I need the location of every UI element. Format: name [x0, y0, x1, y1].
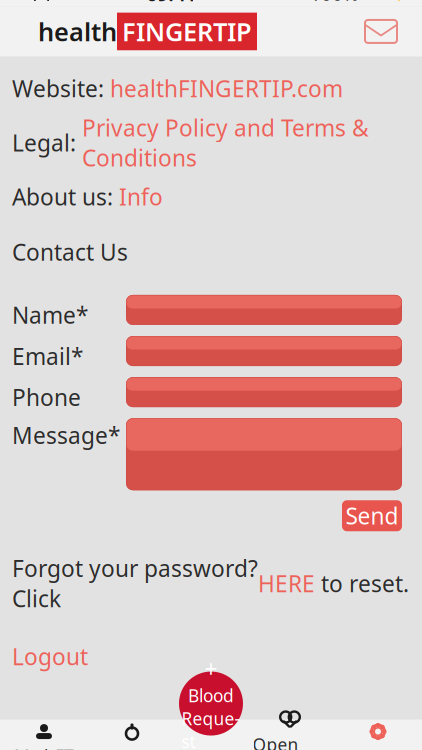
- button[interactable]: Settings: [334, 720, 422, 750]
- staticText: +: [204, 654, 217, 684]
- button[interactable]: Phone: [126, 377, 402, 407]
- staticText: Logout: [12, 641, 88, 672]
- button[interactable]: Name*: [126, 295, 402, 325]
- button[interactable]: Open Requests: [246, 720, 334, 750]
- staticText: Email*: [12, 341, 83, 371]
- button[interactable]: Forgot your password? Click: [12, 553, 409, 613]
- staticText: Message*: [12, 420, 120, 450]
- button[interactable]: Messages: [360, 14, 402, 48]
- staticText: Privacy Policy and Terms & Conditions: [82, 112, 369, 173]
- staticText: Legal:: [12, 128, 82, 158]
- staticText: Contact Us: [12, 237, 128, 267]
- staticText: healthFINGERTIP.com: [110, 73, 343, 103]
- staticText: Send: [345, 501, 398, 531]
- staticText: Name*: [12, 300, 88, 330]
- staticText: Info: [119, 182, 163, 212]
- staticText: Website:: [12, 73, 110, 103]
- button[interactable]: Website:: [12, 73, 343, 103]
- button[interactable]: My Activity: [88, 720, 176, 750]
- staticText: Open Requests: [252, 733, 327, 750]
- staticText: Forgot your password? Click: [12, 553, 258, 613]
- staticText: ⚡: [394, 0, 412, 2]
- button[interactable]: Send: [342, 500, 402, 531]
- button[interactable]: My hFT: [0, 720, 88, 750]
- button[interactable]: Blood Request: [179, 672, 243, 736]
- staticText: FINGERTIP: [122, 15, 252, 48]
- staticText: health: [38, 15, 117, 48]
- button[interactable]: About us:: [12, 182, 163, 212]
- staticText: About us:: [12, 182, 119, 212]
- staticText: 09:41: [146, 0, 196, 7]
- button[interactable]: Email*: [126, 336, 402, 366]
- staticText: My hFT: [14, 744, 74, 750]
- staticText: Phone: [12, 382, 81, 412]
- button[interactable]: Logout: [12, 641, 88, 672]
- staticText: to reset.: [315, 568, 409, 598]
- button[interactable]: health: [38, 13, 257, 50]
- staticText: Blood: [188, 684, 234, 707]
- button[interactable]: Legal:: [12, 112, 369, 173]
- staticText: HERE: [258, 568, 315, 598]
- staticText: Request: [181, 707, 240, 750]
- staticText: 100%: [310, 0, 359, 6]
- button[interactable]: Message*: [126, 418, 402, 490]
